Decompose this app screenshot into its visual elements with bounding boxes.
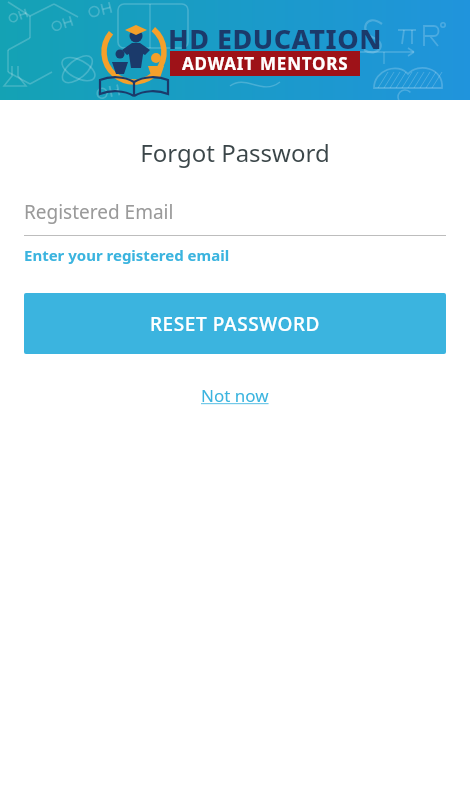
staticText: Registered Email (24, 199, 174, 225)
staticText: Enter your registered email (24, 245, 446, 265)
staticText: RESET PASSWORD (150, 311, 321, 337)
staticText: ADWAIT MENTORS (182, 52, 349, 75)
button[interactable]: RESET PASSWORD (24, 293, 446, 354)
button[interactable]: Registered Email (24, 199, 446, 236)
staticText: Forgot Password (0, 136, 470, 169)
staticText: HD EDUCATION (168, 20, 382, 57)
button[interactable]: Not now (191, 380, 279, 411)
staticText: Not now (201, 384, 269, 407)
